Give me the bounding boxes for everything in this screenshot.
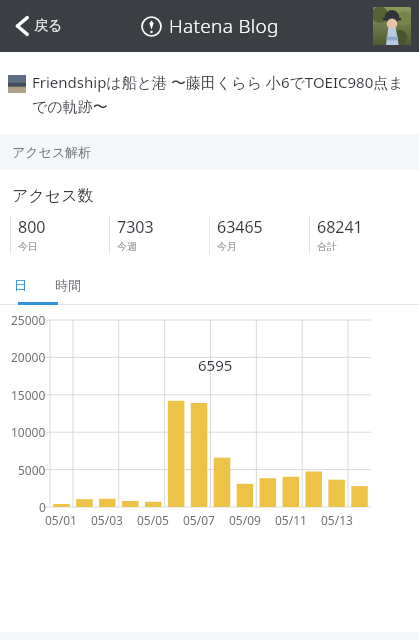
staticText: 05/01 (45, 512, 77, 528)
staticText: Friendshipは船と港 〜藤田くらら 小6でTOEIC980点までの軌跡〜 (32, 72, 407, 116)
staticText: 05/05 (137, 512, 169, 528)
staticText: アクセス数 (12, 186, 94, 206)
staticText: 0 (39, 499, 46, 515)
staticText: 今日 (18, 240, 38, 253)
staticText: 時間 (55, 277, 81, 293)
staticText: 05/13 (321, 512, 353, 528)
staticText: 10000 (11, 424, 46, 440)
staticText: 20000 (11, 349, 46, 365)
staticText: 日 (14, 277, 27, 293)
staticText: 05/03 (91, 512, 123, 528)
staticText: 25000 (11, 312, 46, 328)
button[interactable]: 25000 (0, 305, 419, 555)
staticText: 05/07 (183, 512, 215, 528)
staticText: 6595 (198, 355, 233, 375)
staticText: 今週 (117, 240, 137, 253)
staticText: 800 (18, 216, 46, 238)
staticText: 05/11 (275, 512, 307, 528)
button[interactable]: 68241 (309, 216, 409, 254)
staticText: アクセス解析 (12, 144, 92, 160)
staticText: 15000 (11, 387, 46, 403)
button[interactable]: Friendshipは船と港 〜藤田くらら 小6でTOEIC980点までの軌跡〜 (0, 52, 419, 134)
staticText: 63465 (217, 216, 263, 238)
staticText: Hatena Blog (169, 13, 279, 39)
staticText: 戻る (34, 17, 63, 35)
button[interactable]: 800 (10, 216, 109, 254)
staticText: 68241 (317, 216, 363, 238)
staticText: 05/09 (229, 512, 261, 528)
staticText: 合計 (317, 240, 337, 253)
staticText: 7303 (117, 216, 154, 238)
staticText: 5000 (18, 462, 46, 478)
button[interactable]: 日 (0, 268, 40, 302)
button[interactable]: 時間 (40, 268, 96, 302)
staticText: 今月 (217, 240, 237, 253)
button[interactable]: 7303 (109, 216, 209, 254)
button[interactable]: Account (373, 7, 411, 45)
button[interactable]: 63465 (209, 216, 309, 254)
button[interactable]: 戻る (8, 9, 69, 43)
